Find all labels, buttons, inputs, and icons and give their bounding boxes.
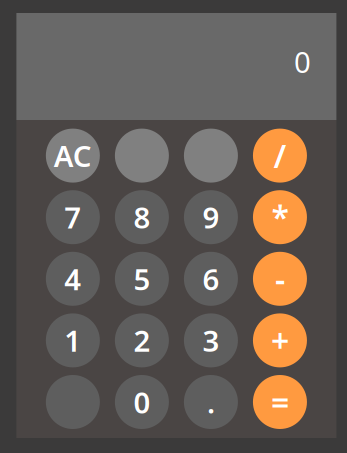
button[interactable]: 7	[46, 190, 100, 244]
button[interactable]: blank	[115, 129, 169, 183]
staticText: /	[273, 134, 286, 177]
button[interactable]: AC	[46, 129, 100, 183]
button[interactable]: equals	[253, 375, 307, 429]
button[interactable]: 4	[46, 252, 100, 306]
button[interactable]: 1	[46, 313, 100, 367]
staticText: 4	[64, 259, 81, 298]
staticText: 8	[133, 198, 150, 237]
staticText: 3	[202, 321, 219, 360]
staticText: 0	[294, 42, 311, 81]
button[interactable]: divide	[253, 129, 307, 183]
staticText: 9	[202, 198, 219, 237]
staticText: +	[271, 319, 289, 362]
staticText: =	[271, 381, 289, 423]
staticText: AC	[54, 136, 92, 175]
button[interactable]: blank	[184, 129, 238, 183]
staticText: 1	[64, 321, 81, 360]
staticText: 2	[133, 321, 150, 360]
staticText: 5	[133, 259, 150, 298]
staticText: -	[275, 258, 285, 300]
staticText: .	[207, 382, 215, 421]
button[interactable]: 6	[184, 252, 238, 306]
button[interactable]: 2	[115, 313, 169, 367]
button[interactable]: 5	[115, 252, 169, 306]
button[interactable]: 9	[184, 190, 238, 244]
button[interactable]: multiply	[253, 190, 307, 244]
button[interactable]: 8	[115, 190, 169, 244]
staticText: 7	[64, 198, 81, 237]
staticText: *	[271, 196, 288, 238]
staticText: 0	[133, 382, 150, 421]
button[interactable]: 3	[184, 313, 238, 367]
button[interactable]: plus	[253, 313, 307, 367]
staticText: 6	[202, 259, 219, 298]
button[interactable]: blank	[46, 375, 100, 429]
button[interactable]: .	[184, 375, 238, 429]
button[interactable]: 0	[115, 375, 169, 429]
button[interactable]: minus	[253, 252, 307, 306]
